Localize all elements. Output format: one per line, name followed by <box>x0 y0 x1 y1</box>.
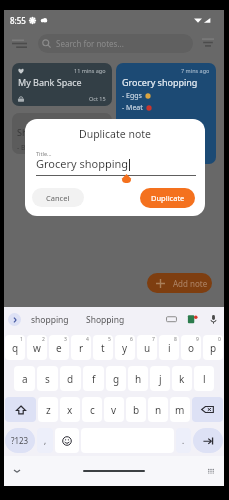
staticText: i <box>168 341 171 355</box>
staticText: q <box>12 341 19 355</box>
button[interactable]: Voice input <box>208 314 219 325</box>
button[interactable]: r <box>71 335 91 360</box>
button[interactable]: w <box>27 335 47 360</box>
staticText: v <box>111 403 117 417</box>
button[interactable]: Shift <box>5 397 36 422</box>
button[interactable]: l <box>194 366 214 391</box>
button[interactable]: x <box>60 397 80 422</box>
staticText: n <box>155 403 162 417</box>
staticText: Grocery shopping <box>122 76 198 88</box>
staticText: . <box>182 435 185 446</box>
staticText: Search for notes... <box>56 38 124 49</box>
staticText: Shopping <box>86 314 125 326</box>
button[interactable]: Hide keyboard <box>12 466 22 476</box>
staticText: Add note <box>173 278 208 289</box>
staticText: 6 <box>130 336 133 343</box>
button[interactable]: 11 mins ago <box>12 63 112 106</box>
button[interactable]: Duplicate <box>140 188 195 208</box>
button[interactable]: Keyboard settings <box>206 466 216 476</box>
button[interactable]: Menu <box>11 34 28 53</box>
button[interactable]: Search for notes... <box>38 34 193 53</box>
button[interactable]: , <box>37 428 53 453</box>
staticText: Duplicate note <box>79 127 151 141</box>
button[interactable]: c <box>82 397 102 422</box>
staticText: l <box>203 372 206 386</box>
staticText: Title... <box>36 150 52 157</box>
button[interactable]: Translate <box>187 314 198 325</box>
staticText: 8:55 <box>10 15 26 26</box>
staticText: 3 <box>64 336 67 343</box>
staticText: j <box>159 372 162 386</box>
button[interactable]: b <box>126 397 146 422</box>
button[interactable]: d <box>60 366 81 391</box>
staticText: My Bank Space <box>18 76 82 88</box>
button[interactable]: Enter <box>193 428 223 453</box>
button[interactable]: g <box>106 366 126 391</box>
button[interactable]: k <box>172 366 192 391</box>
staticText: 1 <box>20 336 23 343</box>
staticText: h <box>135 372 142 386</box>
staticText: Grocery shopping <box>36 156 129 171</box>
staticText: 2 <box>42 336 45 343</box>
staticText: r <box>79 341 84 355</box>
staticText: 8 <box>174 336 177 343</box>
staticText: u <box>144 341 151 355</box>
staticText: e <box>56 341 62 355</box>
staticText: Oct 15 <box>89 95 106 102</box>
button[interactable]: More suggestions <box>8 313 21 326</box>
staticText: ?123 <box>11 435 29 446</box>
button[interactable]: m <box>170 397 190 422</box>
button[interactable]: Shopping list <box>12 113 112 154</box>
button[interactable]: o <box>181 335 201 360</box>
button[interactable]: p <box>203 335 223 360</box>
staticText: 0 <box>218 336 221 343</box>
button[interactable]: Emoji <box>55 428 79 453</box>
button[interactable]: Cancel <box>32 188 84 207</box>
staticText: 7 mins ago <box>181 67 210 74</box>
button[interactable]: z <box>38 397 58 422</box>
staticText: g <box>113 372 120 386</box>
button[interactable]: y <box>115 335 135 360</box>
staticText: t <box>101 341 105 355</box>
staticText: d <box>67 372 74 386</box>
button[interactable]: ?123 <box>5 428 35 453</box>
staticText: 9 <box>196 336 199 343</box>
staticText: o <box>188 341 195 355</box>
button[interactable]: Clipboard <box>166 314 177 325</box>
staticText: , <box>44 435 47 446</box>
staticText: - Bread <box>17 143 41 150</box>
staticText: z <box>46 403 51 417</box>
staticText: k <box>179 372 185 386</box>
button[interactable]: h <box>128 366 148 391</box>
button[interactable]: Filter <box>199 33 217 51</box>
staticText: Cancel <box>46 193 70 203</box>
button[interactable]: Backspace <box>192 397 223 422</box>
staticText: w <box>33 341 41 355</box>
staticText: 11 mins ago <box>74 67 106 74</box>
staticText: Duplicate <box>151 193 185 203</box>
staticText: m <box>175 403 185 417</box>
staticText: s <box>45 372 50 386</box>
staticText: a <box>22 372 28 386</box>
staticText: 7 <box>152 336 155 343</box>
staticText: - Meat <box>122 103 143 113</box>
button[interactable]: 7 mins ago <box>116 63 216 164</box>
button[interactable]: . <box>176 428 191 453</box>
staticText: f <box>92 372 96 386</box>
button[interactable]: q <box>5 335 25 360</box>
button[interactable]: t <box>93 335 113 360</box>
button[interactable]: v <box>104 397 124 422</box>
button[interactable]: Add note <box>147 273 212 293</box>
button[interactable]: e <box>49 335 69 360</box>
staticText: x <box>67 403 73 417</box>
button[interactable]: u <box>137 335 157 360</box>
button[interactable]: s <box>37 366 58 391</box>
staticText: 5 <box>108 336 111 343</box>
button[interactable]: n <box>148 397 168 422</box>
button[interactable]: a <box>14 366 35 391</box>
button[interactable]: i <box>159 335 179 360</box>
staticText: y <box>122 341 128 355</box>
button[interactable]: f <box>83 366 104 391</box>
button[interactable]: j <box>150 366 170 391</box>
